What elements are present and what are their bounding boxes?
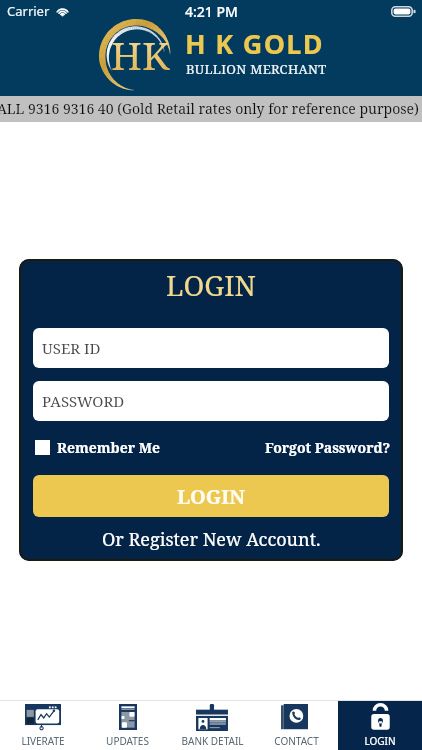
staticText: BANK DETAIL: [181, 734, 244, 748]
other: Login: [370, 704, 391, 731]
button[interactable]: Contact: [254, 701, 338, 750]
other: Live rate: [25, 704, 61, 730]
other: Contact: [281, 704, 308, 730]
button[interactable]: Live rate: [0, 701, 85, 750]
staticText: H K GOLD: [185, 25, 324, 62]
button[interactable]: Or Register New Account.: [102, 527, 321, 552]
staticText: USER ID: [42, 338, 101, 358]
button[interactable]: Forgot Password?: [265, 438, 391, 457]
staticText: HK: [111, 28, 170, 81]
staticText: PASSWORD: [42, 391, 125, 411]
button[interactable]: USER ID: [33, 328, 389, 368]
button[interactable]: Remember Me: [35, 436, 160, 458]
other: Updates: [119, 704, 137, 730]
button[interactable]: PASSWORD: [33, 381, 389, 421]
staticText: LIVERATE: [21, 734, 65, 748]
staticText: UPDATES: [106, 734, 149, 748]
button[interactable]: LOGIN: [33, 475, 389, 517]
staticText: Carrier: [7, 2, 50, 20]
staticText: CONTACT: [274, 734, 319, 748]
other: Bank detail: [195, 704, 229, 731]
staticText: LOGIN: [364, 734, 396, 748]
staticText: Remember Me: [57, 438, 160, 456]
button[interactable]: Updates: [85, 701, 170, 750]
button[interactable]: Login: [338, 701, 422, 750]
staticText: LOGIN: [166, 266, 256, 304]
staticText: LOGIN: [177, 483, 245, 510]
staticText: 4:21 PM: [185, 2, 238, 21]
button[interactable]: Bank detail: [170, 701, 254, 750]
staticText: ALL 9316 9316 40 (Gold Retail rates only…: [0, 99, 419, 118]
staticText: BULLION MERCHANT: [186, 60, 327, 78]
